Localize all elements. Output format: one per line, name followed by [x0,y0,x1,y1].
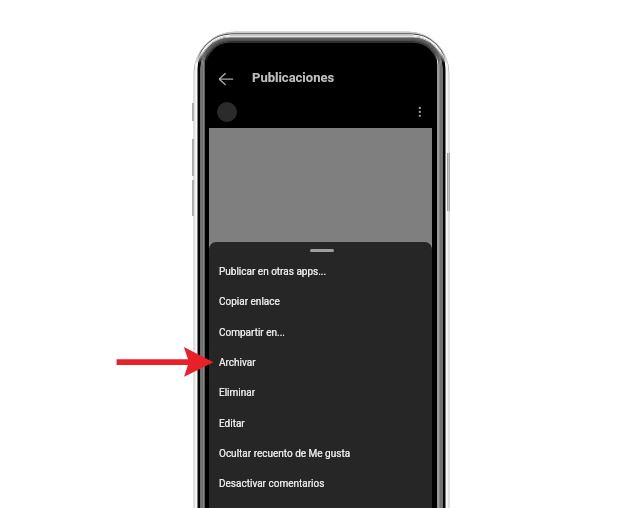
staticText: Publicar en otras apps... [219,266,327,278]
staticText: Editar [219,418,245,430]
button[interactable]: Desactivar comentarios [209,469,432,499]
button[interactable]: Ocultar recuento de Me gusta [209,439,432,469]
button[interactable]: Copiar enlace [209,287,432,317]
staticText: Archivar [219,357,256,369]
staticText: Desactivar comentarios [219,478,325,490]
button[interactable]: More options [408,97,430,119]
button[interactable]: Publicar en otras apps... [209,257,432,287]
button[interactable]: Compartir en... [209,318,432,348]
staticText: Publicaciones [252,70,335,85]
button[interactable]: Archivar [209,348,432,378]
staticText: Eliminar [219,387,256,399]
button[interactable]: Back [213,65,237,89]
staticText: Ocultar recuento de Me gusta [219,448,351,460]
button[interactable]: Eliminar [209,378,432,408]
staticText: Compartir en... [219,327,285,339]
staticText: Copiar enlace [219,296,280,308]
button[interactable]: Editar [209,409,432,439]
